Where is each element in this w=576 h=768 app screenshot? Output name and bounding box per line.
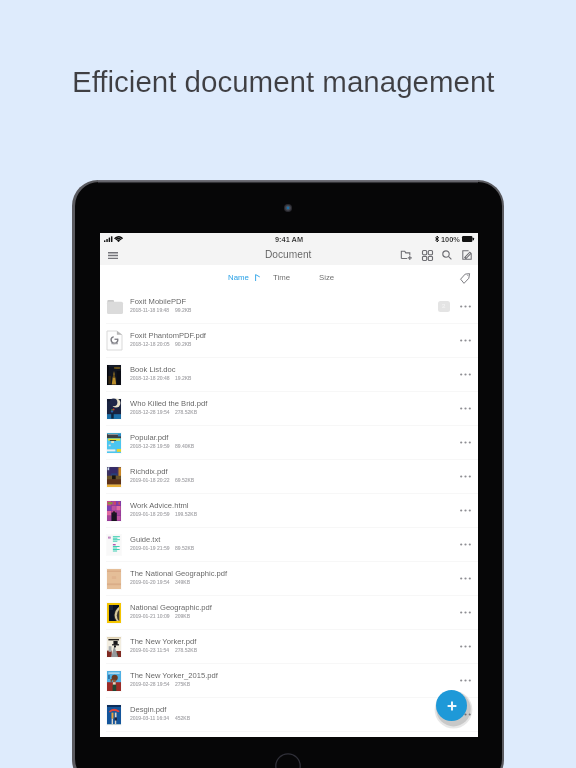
staticText: Foxit PhantomPDF.pdf: [130, 331, 206, 339]
staticText: 2019-01-19 21:59: [130, 545, 170, 551]
staticText: 69.52KB: [175, 477, 195, 483]
staticText: 2019-03-11 16:34: [130, 715, 170, 721]
staticText: 2018-12-28 19:54: [130, 409, 170, 415]
button[interactable]: Search: [439, 247, 454, 262]
button[interactable]: Size: [319, 273, 335, 282]
staticText: Popular.pdf: [130, 433, 169, 441]
button[interactable]: More options: [458, 299, 472, 313]
staticText: 90.2KB: [175, 341, 192, 347]
staticText: National Geographic.pdf: [130, 603, 212, 611]
staticText: Guide.txt: [130, 535, 161, 543]
button[interactable]: Guide.txt: [100, 528, 478, 562]
staticText: 19.2KB: [175, 375, 192, 381]
button[interactable]: More options: [458, 333, 472, 347]
staticText: 2018-12-18 20:05: [130, 341, 170, 347]
staticText: Efficient document management: [72, 65, 495, 98]
staticText: Name: [228, 273, 249, 282]
button[interactable]: Edit: [459, 247, 474, 262]
button[interactable]: More options: [458, 503, 472, 517]
staticText: 2018-12-28 19:59: [130, 443, 170, 449]
staticText: 9:41 AM: [275, 235, 304, 243]
staticText: 278.52KB: [175, 647, 197, 653]
button[interactable]: The New Yorker_2015.pdf: [100, 664, 478, 698]
button[interactable]: Grid view: [419, 247, 434, 262]
button[interactable]: More options: [458, 571, 472, 585]
button[interactable]: More options: [458, 707, 472, 721]
button[interactable]: Foxit MobilePDF: [100, 290, 478, 324]
button[interactable]: More options: [458, 401, 472, 415]
staticText: 2019-01-23 11:54: [130, 647, 170, 653]
button[interactable]: More options: [458, 673, 472, 687]
staticText: 89.40KB: [175, 443, 195, 449]
staticText: The National Geographic.pdf: [130, 569, 228, 577]
button[interactable]: More options: [458, 435, 472, 449]
staticText: 452KB: [175, 715, 191, 721]
button[interactable]: More options: [458, 367, 472, 381]
button[interactable]: More options: [458, 639, 472, 653]
button[interactable]: More options: [458, 537, 472, 551]
staticText: 2019-01-20 19:54: [130, 579, 170, 585]
button[interactable]: National Geographic.pdf: [100, 596, 478, 630]
staticText: 2019-01-21 10:09: [130, 613, 170, 619]
staticText: 100%: [441, 235, 460, 243]
button[interactable]: Tags: [458, 271, 472, 285]
button[interactable]: New folder: [399, 247, 414, 262]
button[interactable]: Time: [273, 273, 291, 282]
button[interactable]: Book List.doc: [100, 358, 478, 392]
button[interactable]: Name: [228, 273, 260, 282]
staticText: Richdix.pdf: [130, 467, 168, 475]
staticText: Foxit MobilePDF: [130, 297, 187, 305]
staticText: Work Advice.html: [130, 501, 189, 509]
staticText: 2019-01-18 20:22: [130, 477, 170, 483]
staticText: 89.52KB: [175, 545, 195, 551]
staticText: 99.2KB: [175, 307, 192, 313]
button[interactable]: More options: [458, 605, 472, 619]
button[interactable]: Menu: [106, 248, 120, 262]
staticText: 199.52KB: [175, 511, 197, 517]
staticText: Book List.doc: [130, 365, 176, 373]
button[interactable]: Popular.pdf: [100, 426, 478, 460]
button[interactable]: More options: [458, 469, 472, 483]
staticText: Document: [265, 249, 312, 260]
button[interactable]: Foxit PhantomPDF.pdf: [100, 324, 478, 358]
button[interactable]: Who Killed the Brid.pdf: [100, 392, 478, 426]
staticText: 2018-11-18 19:48: [130, 307, 170, 313]
button[interactable]: Desgin.pdf: [100, 698, 478, 732]
staticText: Who Killed the Brid.pdf: [130, 399, 208, 407]
staticText: 209KB: [175, 613, 191, 619]
staticText: 2019-02-28 19:54: [130, 681, 170, 687]
button[interactable]: Richdix.pdf: [100, 460, 478, 494]
staticText: Desgin.pdf: [130, 705, 167, 713]
staticText: The New Yorker_2015.pdf: [130, 671, 218, 679]
staticText: 2018-12-18 20:48: [130, 375, 170, 381]
staticText: 278.52KB: [175, 409, 197, 415]
staticText: 275KB: [175, 681, 191, 687]
staticText: 349KB: [175, 579, 191, 585]
button[interactable]: The National Geographic.pdf: [100, 562, 478, 596]
button[interactable]: The New Yorker.pdf: [100, 630, 478, 664]
staticText: 2: [442, 303, 446, 310]
staticText: The New Yorker.pdf: [130, 637, 197, 645]
button[interactable]: Work Advice.html: [100, 494, 478, 528]
staticText: 2019-01-18 20:59: [130, 511, 170, 517]
button[interactable]: Add: [436, 690, 467, 721]
